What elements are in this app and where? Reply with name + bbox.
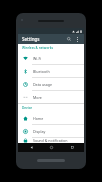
staticText: Device <box>22 106 33 110</box>
staticText: Data usage <box>33 82 53 87</box>
button[interactable]: More options <box>73 35 81 43</box>
staticText: More <box>33 95 42 100</box>
staticText: Sound & notification <box>33 138 68 143</box>
button[interactable]: Home <box>18 112 84 124</box>
button[interactable]: Bluetooth <box>18 65 84 77</box>
button[interactable]: Search <box>65 35 73 43</box>
staticText: Home <box>33 116 44 121</box>
staticText: Wireless & networks <box>22 46 54 50</box>
staticText: Wi-Fi <box>33 56 42 61</box>
staticText: Settings <box>22 36 40 42</box>
staticText: Display <box>33 129 46 134</box>
button[interactable]: Sound & notification <box>18 138 84 143</box>
staticText: Bluetooth <box>33 69 50 74</box>
button[interactable]: Data usage <box>18 78 84 90</box>
button[interactable]: Display <box>18 125 84 137</box>
button[interactable]: Wi-Fi <box>18 52 84 64</box>
button[interactable]: Home <box>43 143 59 152</box>
button[interactable]: Back <box>23 143 39 152</box>
button[interactable]: Recent apps <box>64 143 80 152</box>
button[interactable]: More <box>18 91 84 103</box>
